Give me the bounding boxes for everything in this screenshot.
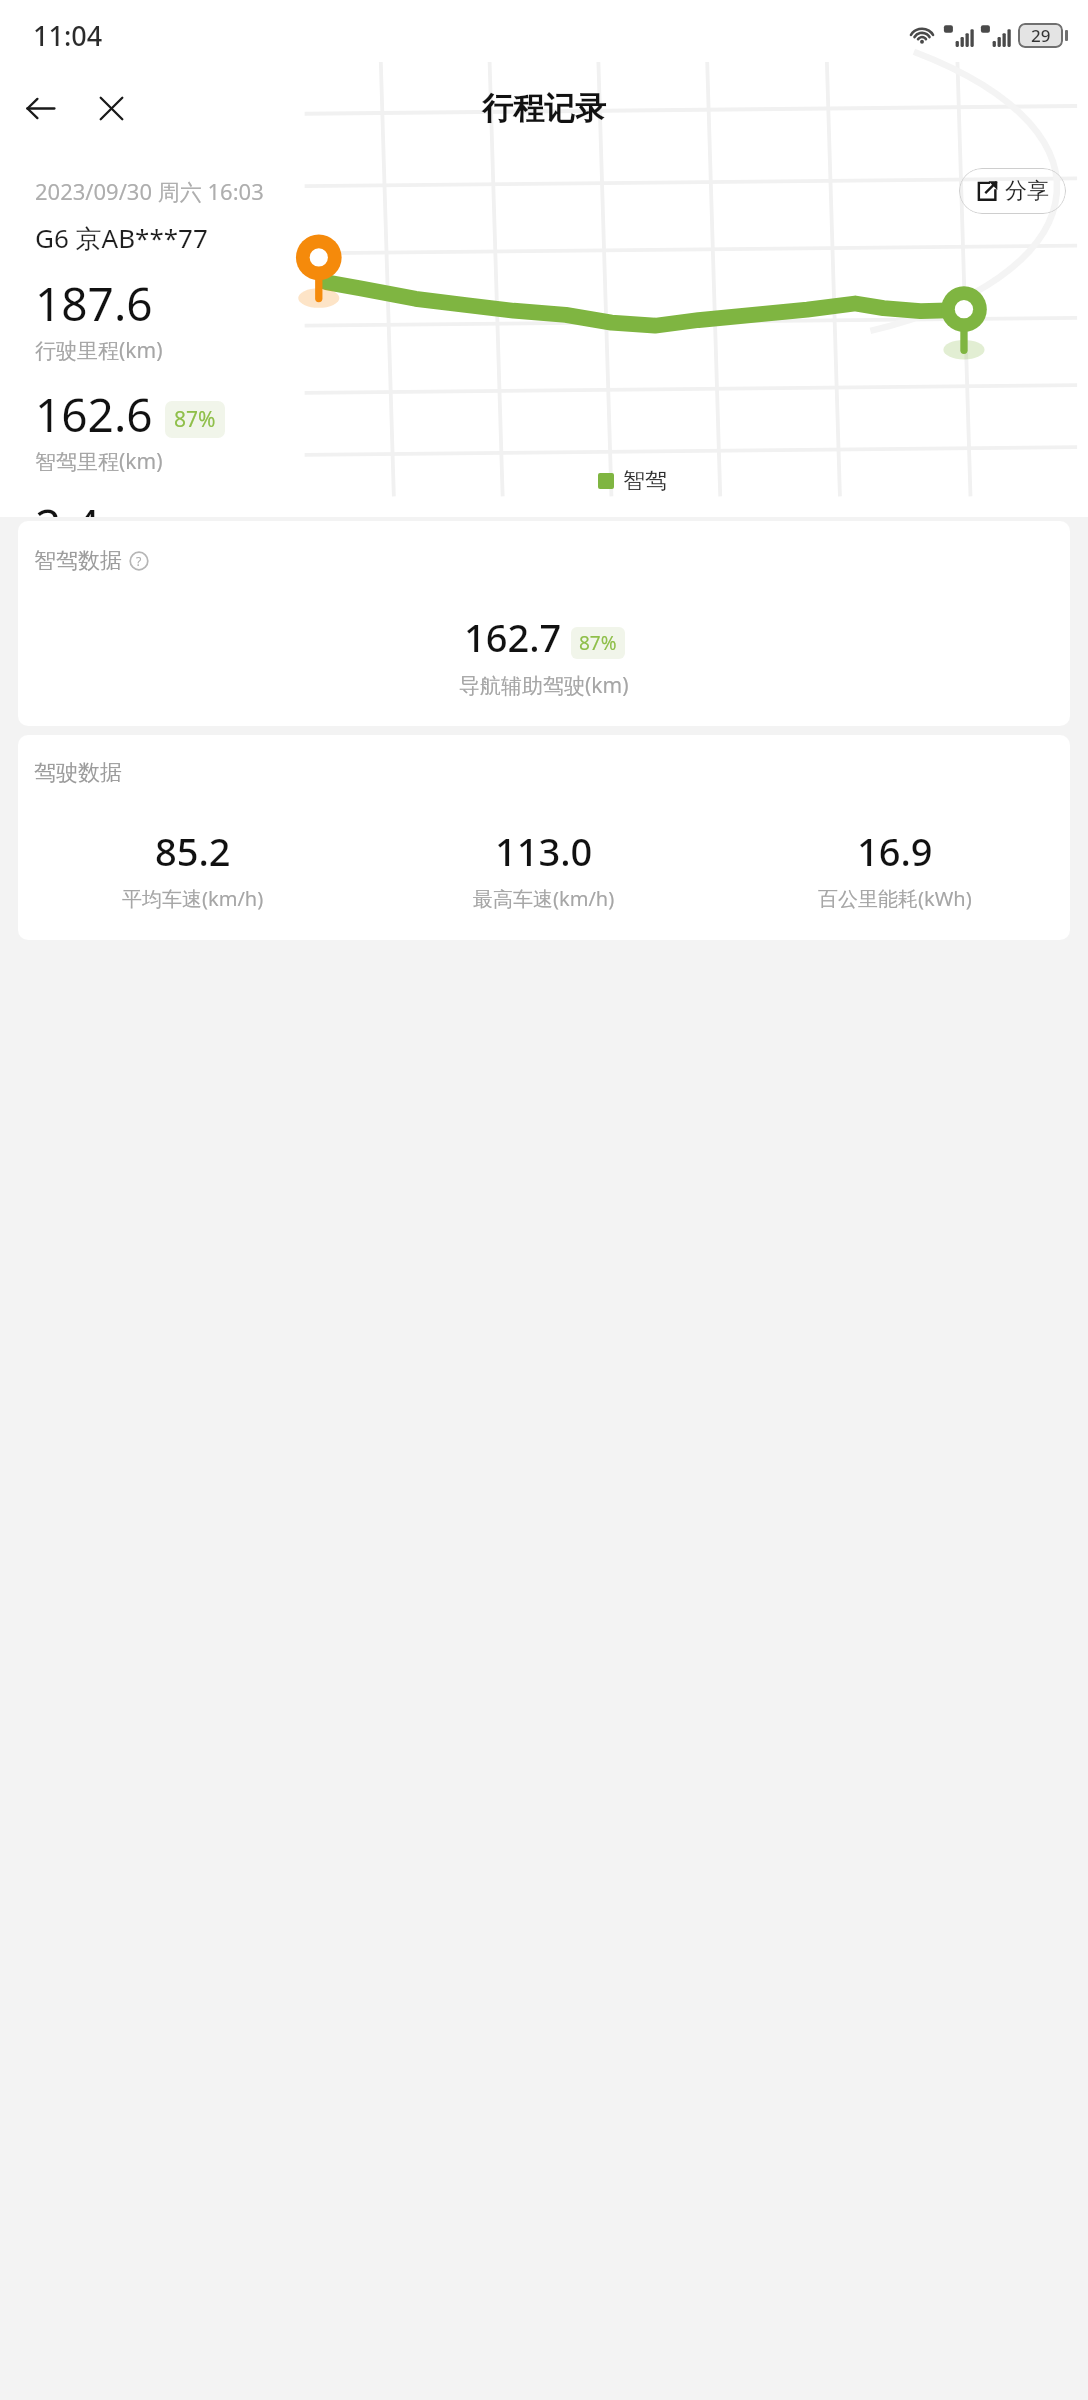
staticText: 驾驶数据 bbox=[34, 759, 122, 787]
staticText: 行驶里程(km) bbox=[35, 336, 163, 365]
staticText: 平均车速(km/h) bbox=[122, 885, 264, 912]
staticText: 2023/09/30 周六 16:03 bbox=[35, 176, 264, 206]
staticText: ? bbox=[136, 553, 142, 570]
button[interactable]: Close bbox=[80, 77, 142, 139]
button[interactable]: Back bbox=[9, 77, 71, 139]
staticText: 行程记录 bbox=[482, 89, 606, 128]
button[interactable]: 113.0 bbox=[368, 823, 719, 914]
staticText: G6 京AB***77 bbox=[35, 220, 208, 256]
staticText: 智驾 bbox=[623, 467, 667, 495]
staticText: 最高车速(km/h) bbox=[473, 885, 615, 912]
staticText: 87% bbox=[174, 405, 216, 434]
staticText: 29 bbox=[1031, 24, 1051, 47]
staticText: 2.4 bbox=[35, 494, 100, 517]
button[interactable]: 85.2 bbox=[18, 823, 368, 914]
button[interactable]: 16.9 bbox=[719, 823, 1070, 914]
staticText: 智驾里程(km) bbox=[35, 447, 163, 476]
staticText: 85.2 bbox=[155, 825, 231, 877]
staticText: 162.6 bbox=[35, 383, 153, 446]
button[interactable]: 分享 bbox=[959, 168, 1066, 214]
button[interactable]: 智驾数据 bbox=[34, 545, 149, 577]
staticText: 百公里能耗(kWh) bbox=[818, 885, 972, 912]
staticText: 导航辅助驾驶(km) bbox=[459, 671, 629, 700]
staticText: 11:04 bbox=[33, 17, 103, 54]
staticText: 113.0 bbox=[495, 825, 593, 877]
staticText: 162.7 bbox=[464, 611, 562, 663]
staticText: 16.9 bbox=[857, 825, 933, 877]
staticText: 分享 bbox=[1005, 177, 1049, 205]
staticText: 187.6 bbox=[35, 272, 153, 335]
staticText: 87% bbox=[579, 630, 617, 656]
staticText: 智驾数据 bbox=[34, 547, 122, 575]
